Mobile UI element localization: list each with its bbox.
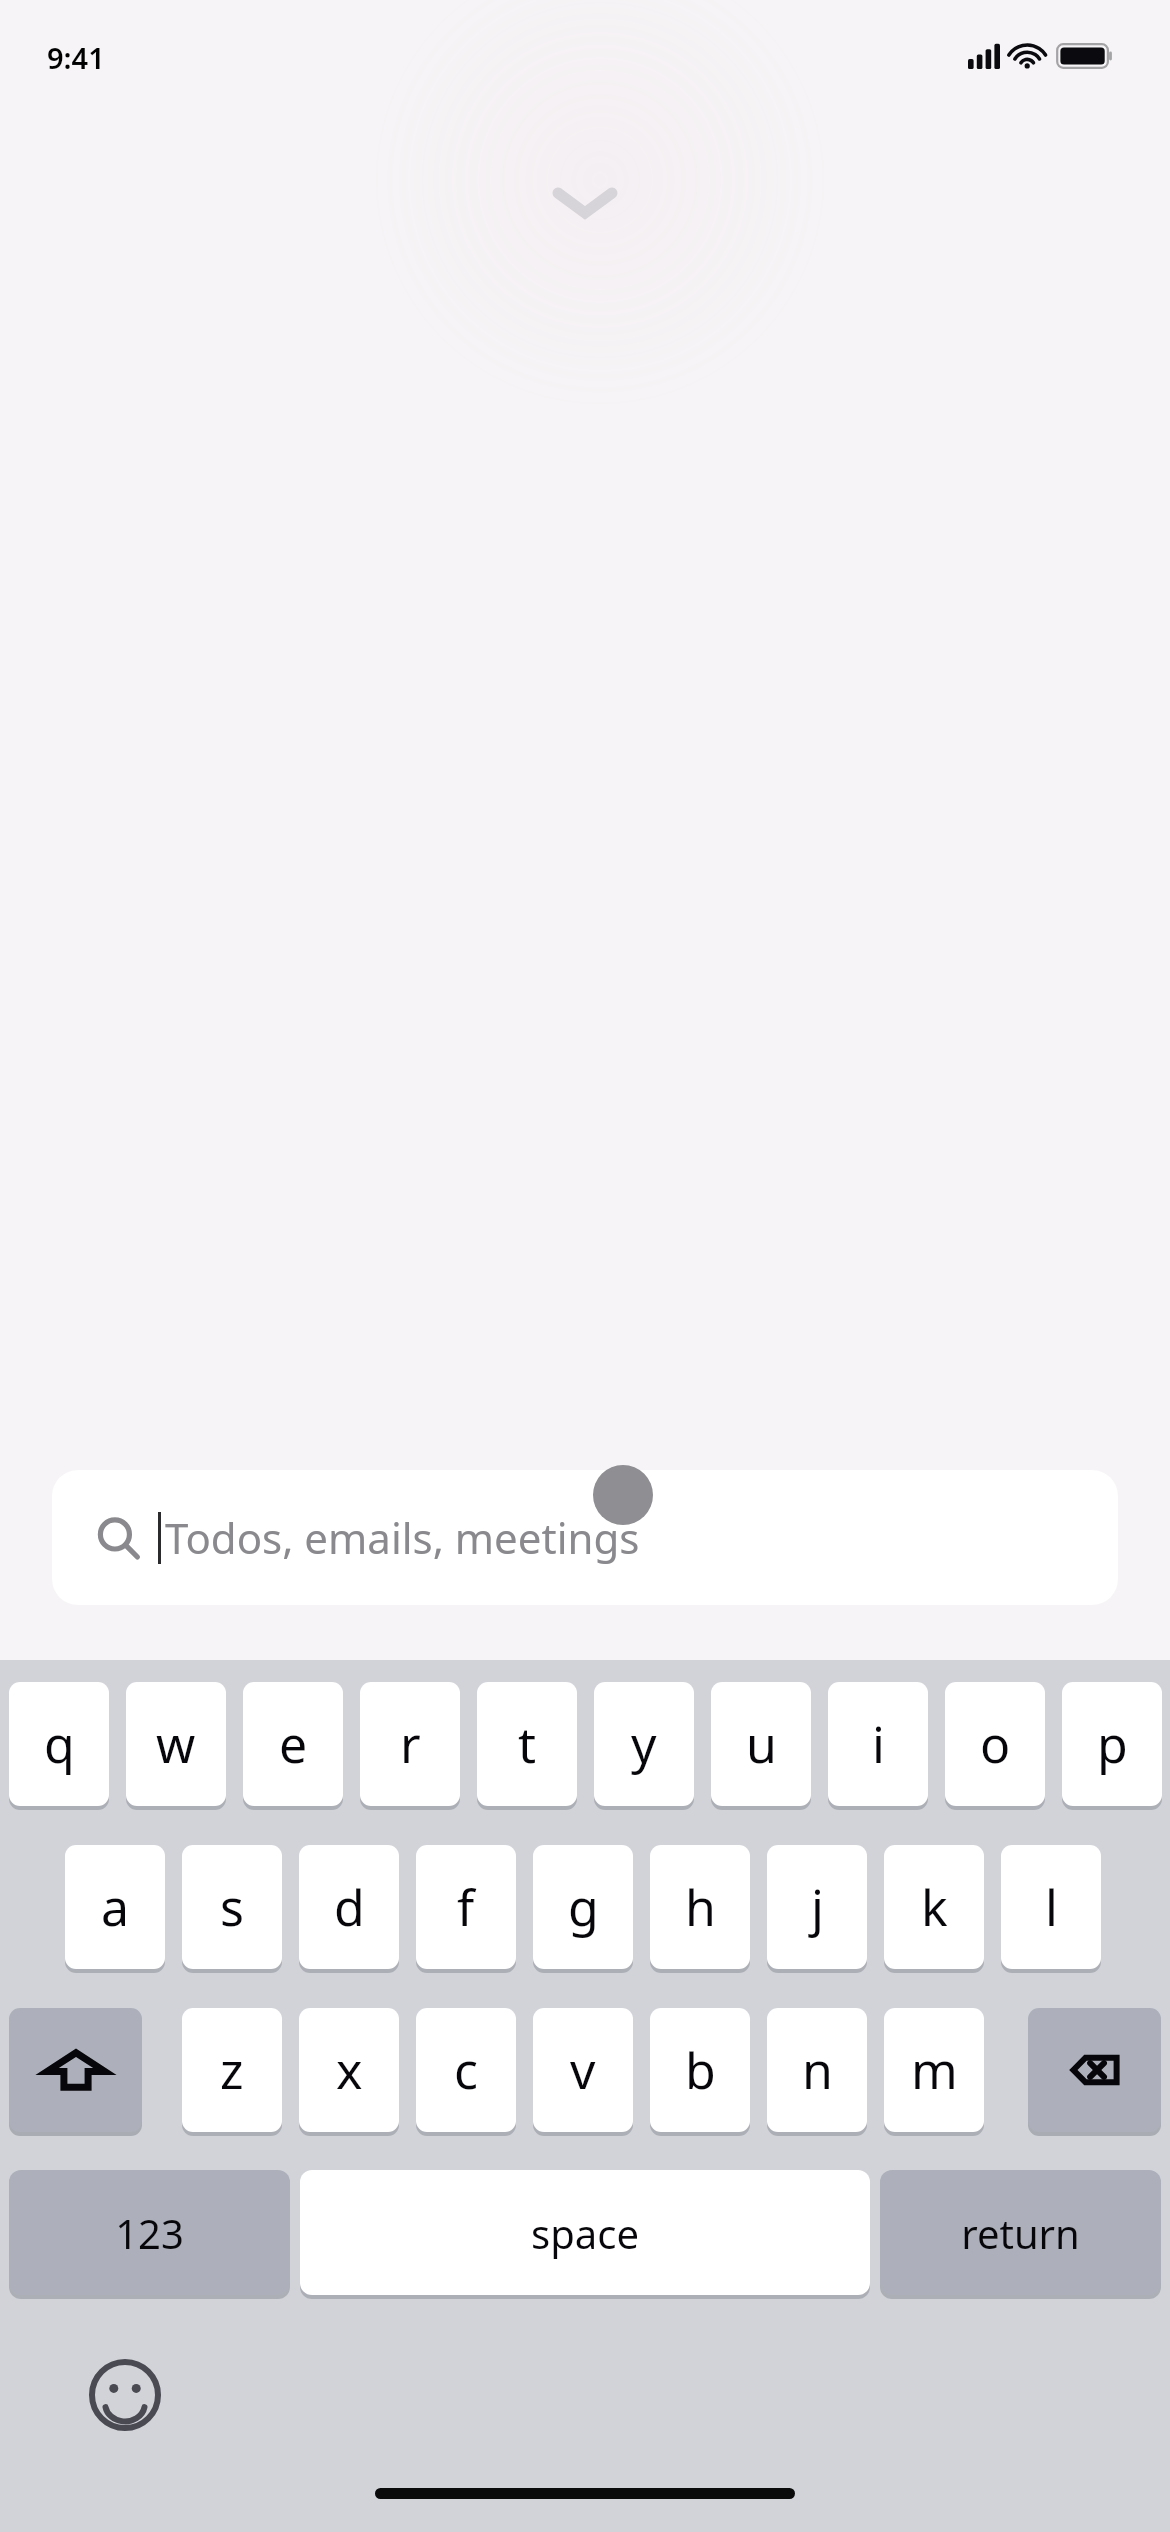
staticText: y <box>631 1710 657 1778</box>
staticText: t <box>518 1710 537 1778</box>
staticText: p <box>1097 1710 1128 1778</box>
staticText: q <box>44 1710 75 1778</box>
button[interactable]: 123 <box>9 2170 290 2295</box>
staticText: b <box>685 2036 716 2104</box>
button[interactable]: space <box>300 2170 870 2295</box>
staticText: l <box>1045 1873 1058 1941</box>
button[interactable]: return <box>880 2170 1161 2295</box>
button[interactable]: z <box>182 2008 282 2132</box>
button[interactable]: m <box>884 2008 984 2132</box>
button[interactable]: i <box>828 1682 928 1806</box>
button[interactable]: a <box>65 1845 165 1969</box>
staticText: n <box>802 2036 833 2104</box>
button[interactable]: e <box>243 1682 343 1806</box>
button[interactable]: y <box>594 1682 694 1806</box>
button[interactable]: r <box>360 1682 460 1806</box>
staticText: z <box>220 2036 244 2104</box>
button[interactable]: b <box>650 2008 750 2132</box>
button[interactable]: g <box>533 1845 633 1969</box>
button[interactable]: u <box>711 1682 811 1806</box>
button[interactable]: k <box>884 1845 984 1969</box>
staticText: return <box>961 2206 1080 2260</box>
staticText: j <box>811 1873 824 1941</box>
staticText: r <box>400 1710 421 1778</box>
button[interactable]: Shift <box>9 2008 142 2132</box>
staticText: h <box>685 1873 716 1941</box>
button[interactable]: f <box>416 1845 516 1969</box>
button[interactable]: w <box>126 1682 226 1806</box>
staticText: f <box>457 1873 475 1941</box>
button[interactable]: Todos, emails, meetings <box>52 1470 1118 1605</box>
button[interactable]: v <box>533 2008 633 2132</box>
button[interactable]: l <box>1001 1845 1101 1969</box>
staticText: 123 <box>115 2206 184 2260</box>
staticText: 9:41 <box>47 38 105 77</box>
button[interactable]: c <box>416 2008 516 2132</box>
button[interactable]: q <box>9 1682 109 1806</box>
staticText: g <box>568 1873 599 1941</box>
button[interactable]: d <box>299 1845 399 1969</box>
staticText: i <box>872 1710 885 1778</box>
button[interactable]: Emoji keyboard <box>78 2348 172 2442</box>
staticText: o <box>980 1710 1011 1778</box>
staticText: v <box>570 2036 596 2104</box>
staticText: x <box>336 2036 363 2104</box>
staticText: u <box>746 1710 777 1778</box>
staticText: s <box>220 1873 244 1941</box>
button[interactable]: Delete <box>1028 2008 1161 2132</box>
staticText: w <box>156 1710 196 1778</box>
staticText: m <box>911 2036 958 2104</box>
button[interactable]: j <box>767 1845 867 1969</box>
staticText: space <box>531 2206 639 2260</box>
button[interactable]: p <box>1062 1682 1162 1806</box>
button[interactable]: x <box>299 2008 399 2132</box>
staticText: d <box>334 1873 365 1941</box>
staticText: c <box>454 2036 478 2104</box>
staticText: a <box>101 1873 130 1941</box>
staticText: e <box>279 1710 308 1778</box>
button[interactable]: Dismiss <box>525 168 645 238</box>
button[interactable]: h <box>650 1845 750 1969</box>
button[interactable]: s <box>182 1845 282 1969</box>
button[interactable]: o <box>945 1682 1045 1806</box>
staticText: Todos, emails, meetings <box>165 1509 640 1566</box>
staticText: k <box>921 1873 948 1941</box>
button[interactable]: n <box>767 2008 867 2132</box>
button[interactable]: t <box>477 1682 577 1806</box>
